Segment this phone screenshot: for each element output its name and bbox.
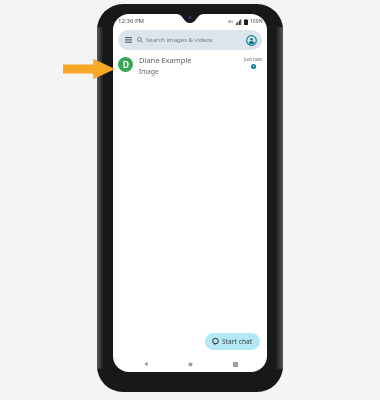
staticText: Diane Example [139, 55, 192, 65]
staticText: D [123, 59, 129, 70]
staticText: Start chat [222, 337, 253, 346]
button[interactable]: Back [134, 356, 158, 372]
button[interactable]: Menu [118, 30, 262, 50]
staticText: Search images & videos [146, 36, 213, 44]
staticText: 100% [250, 18, 263, 25]
button[interactable]: D [113, 55, 267, 85]
button[interactable]: Menu [123, 35, 133, 45]
staticText: Just now [244, 56, 262, 62]
button[interactable]: Home [178, 356, 202, 372]
button[interactable]: Account [245, 34, 257, 46]
staticText: 12:30 PM [118, 17, 145, 25]
staticText: 4G [228, 19, 234, 24]
button[interactable]: Start chat [205, 333, 260, 350]
other: Pointer arrow [63, 58, 115, 80]
staticText: Image [139, 67, 159, 76]
button[interactable]: Recent apps [223, 356, 247, 372]
